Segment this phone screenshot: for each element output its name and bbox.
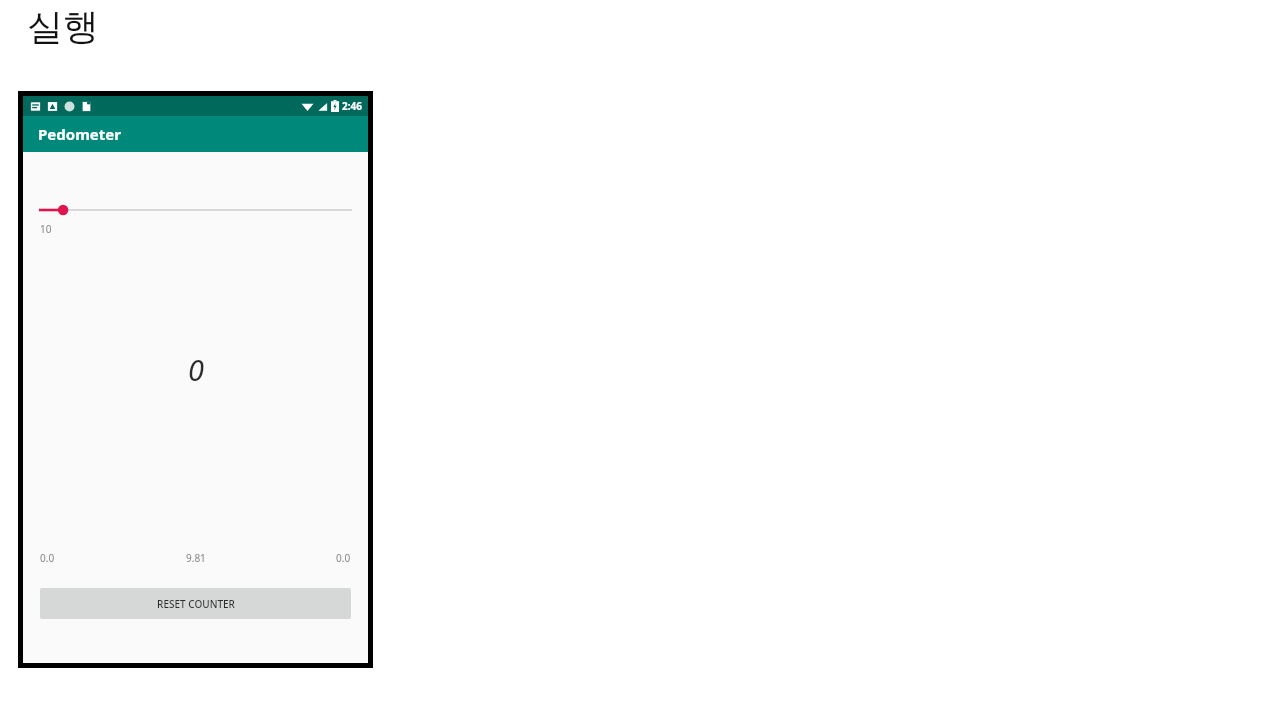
staticText: 9.81 <box>186 551 206 565</box>
staticText: 2:46 <box>342 99 362 113</box>
staticText: 0 <box>188 350 204 389</box>
button[interactable]: Sensitivity slider <box>23 199 368 221</box>
staticText: RESET COUNTER <box>157 597 235 611</box>
staticText: 실행 <box>27 4 99 49</box>
staticText: 0.0 <box>40 551 55 565</box>
button[interactable]: RESET COUNTER <box>40 588 351 619</box>
staticText: 10 <box>40 222 52 236</box>
staticText: Pedometer <box>38 124 121 144</box>
staticText: 0.0 <box>336 551 351 565</box>
